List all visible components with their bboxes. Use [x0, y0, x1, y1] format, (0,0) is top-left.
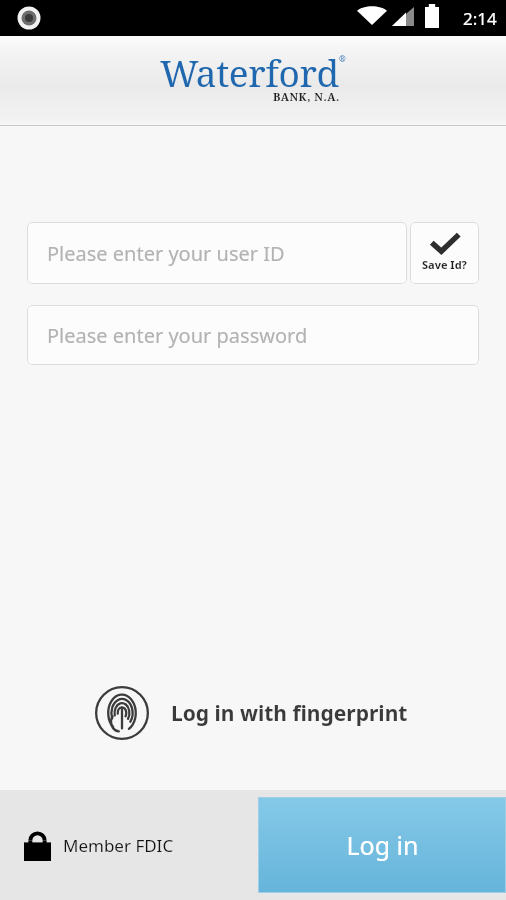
button[interactable]: Please enter your user ID — [27, 222, 407, 284]
staticText: ® — [339, 53, 346, 64]
staticText: Member FDIC — [63, 834, 174, 857]
button[interactable]: Please enter your password — [27, 305, 479, 365]
staticText: Save Id? — [422, 257, 467, 272]
staticText: BANK, N.A. — [273, 89, 340, 104]
button[interactable]: Log in — [258, 797, 506, 893]
staticText: Please enter your password — [47, 322, 308, 349]
staticText: Log in with fingerprint — [171, 699, 408, 728]
button[interactable]: Save Id — [410, 222, 479, 284]
button[interactable]: Member FDIC — [24, 830, 174, 861]
staticText: 2:14 — [463, 7, 497, 30]
staticText: Log in — [346, 828, 419, 862]
button[interactable]: Log in with fingerprint — [0, 677, 506, 749]
staticText: Waterford — [160, 47, 339, 97]
staticText: Please enter your user ID — [47, 240, 285, 267]
